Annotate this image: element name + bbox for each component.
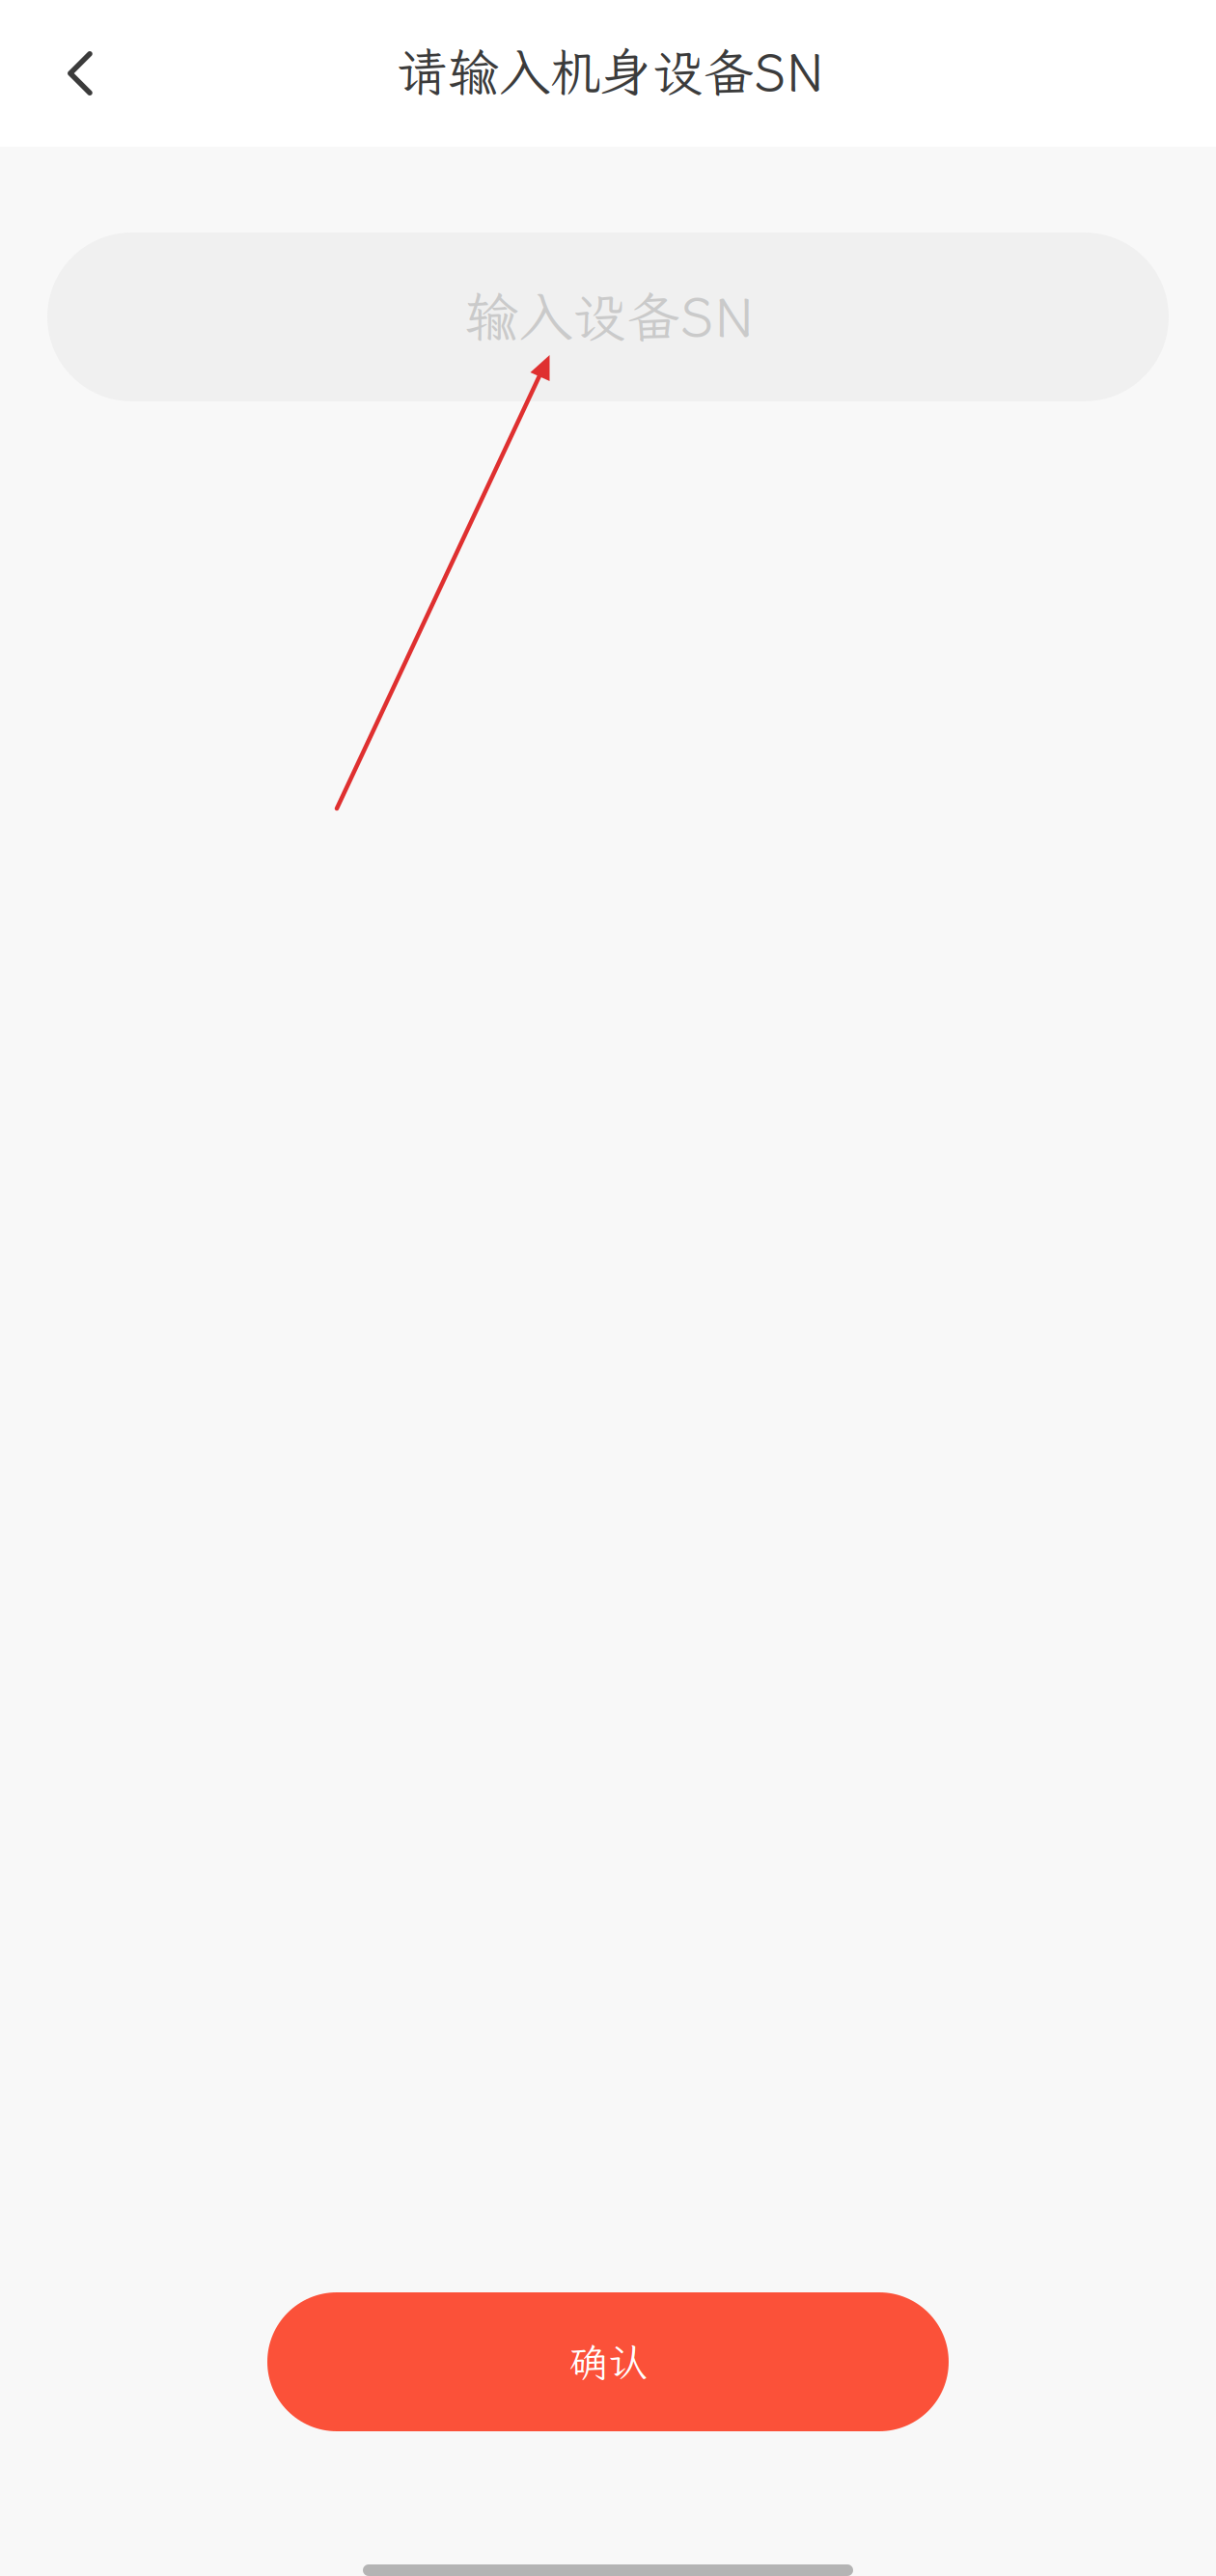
staticText: 请输入机身设备SN <box>396 38 824 105</box>
button[interactable]: Back <box>25 18 135 128</box>
button[interactable]: 确认 <box>267 2292 949 2431</box>
staticText: 确认 <box>569 2336 647 2387</box>
staticText: 输入设备SN <box>464 280 754 352</box>
button[interactable]: 输入设备SN <box>47 233 1169 401</box>
